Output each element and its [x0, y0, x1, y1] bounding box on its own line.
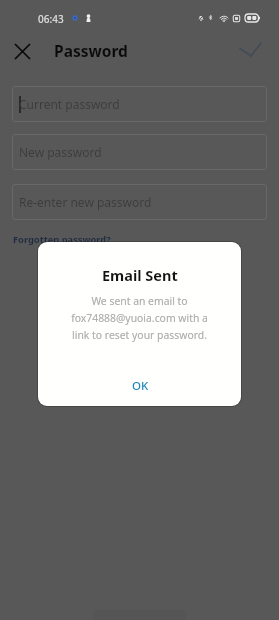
button[interactable]: Current password	[12, 86, 267, 122]
staticText: Current password	[19, 96, 120, 112]
button[interactable]: OK	[108, 372, 172, 398]
staticText: Email Sent	[102, 265, 178, 285]
button[interactable]: Close	[7, 36, 37, 66]
staticText: Re-enter new password	[19, 194, 152, 210]
staticText: We sent an email to fox74888@yuoia.com w…	[71, 294, 208, 342]
button[interactable]: Forgotten password?	[11, 231, 113, 248]
button[interactable]: Re-enter new password	[12, 184, 267, 220]
staticText: New password	[19, 144, 102, 160]
button[interactable]: New password	[12, 134, 267, 170]
staticText: 06:43	[38, 12, 64, 26]
staticText: Password	[54, 40, 128, 61]
staticText: OK	[132, 378, 149, 394]
button[interactable]: Confirm	[234, 33, 266, 65]
staticText: Forgotten password?	[13, 233, 111, 246]
